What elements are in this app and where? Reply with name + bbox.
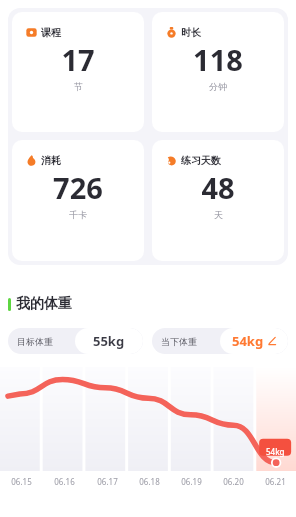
staticText: 55kg — [93, 332, 125, 350]
staticText: 天 — [214, 209, 223, 220]
staticText: 118 — [193, 40, 243, 79]
staticText: 06.17 — [97, 476, 118, 487]
staticText: 当下体重 — [161, 336, 197, 347]
staticText: 目标体重 — [17, 336, 53, 347]
staticText: 我的体重 — [16, 295, 72, 313]
button[interactable]: 课程 — [12, 12, 144, 132]
staticText: 节 — [74, 81, 83, 92]
staticText: 06.15 — [11, 476, 32, 487]
staticText: 06.20 — [223, 476, 244, 487]
staticText: 06.16 — [54, 476, 75, 487]
button[interactable]: 目标体重 — [8, 328, 143, 354]
staticText: 千卡 — [69, 209, 87, 220]
button[interactable]: 时长 — [152, 12, 284, 132]
staticText: 消耗 — [41, 154, 61, 167]
staticText: 时长 — [181, 26, 201, 39]
staticText: 06.21 — [265, 476, 286, 487]
staticText: 06.19 — [181, 476, 202, 487]
staticText: 48 — [201, 168, 235, 207]
staticText: 726 — [53, 168, 103, 207]
button[interactable]: 当下体重 — [152, 328, 288, 354]
staticText: 练习天数 — [181, 154, 221, 167]
button[interactable]: 消耗 — [12, 140, 144, 261]
staticText: 分钟 — [209, 81, 227, 92]
staticText: 54kg — [266, 446, 285, 457]
staticText: 17 — [61, 40, 95, 79]
staticText: 54kg — [232, 332, 264, 350]
button[interactable]: 练习天数 — [152, 140, 284, 261]
staticText: 课程 — [41, 26, 61, 39]
staticText: 06.18 — [139, 476, 160, 487]
other: Edit weight — [267, 336, 277, 346]
